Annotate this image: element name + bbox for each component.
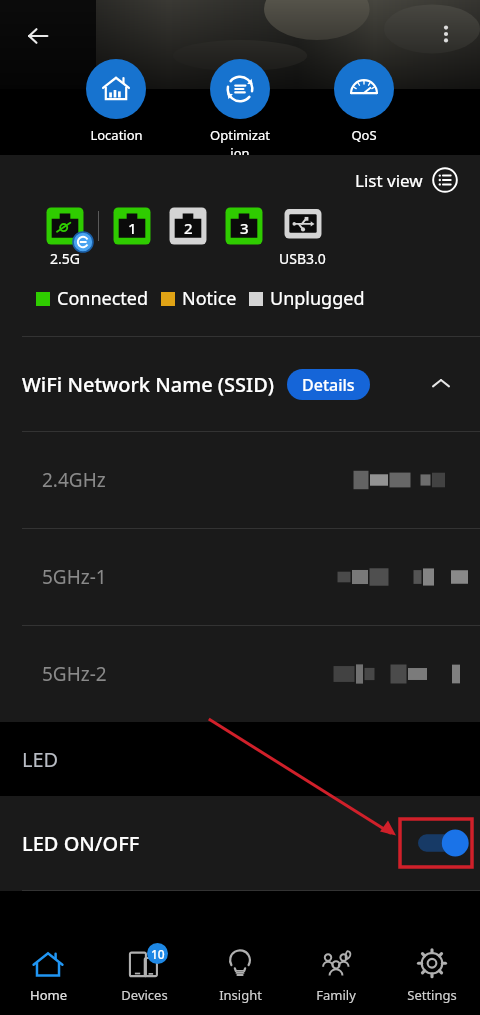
staticText: Notice xyxy=(182,286,237,311)
staticText: Home xyxy=(30,986,67,1004)
staticText: Details xyxy=(302,374,355,396)
button[interactable]: 5GHz-1 xyxy=(0,529,480,625)
staticText: LED ON/OFF xyxy=(22,830,140,857)
button[interactable]: Insight xyxy=(192,939,288,1004)
button[interactable]: Optimization xyxy=(210,59,270,162)
button[interactable]: QoS xyxy=(334,59,394,144)
staticText: 5GHz-2 xyxy=(42,661,107,687)
button[interactable]: Family xyxy=(288,939,384,1004)
staticText: 5GHz-1 xyxy=(42,564,107,590)
button[interactable]: 1 xyxy=(111,205,153,268)
staticText: USB3.0 xyxy=(279,249,326,268)
button[interactable]: Home xyxy=(0,939,96,1004)
button[interactable]: Details xyxy=(287,369,370,400)
staticText: 2.5G xyxy=(50,249,80,268)
button[interactable]: LED ON/OFF xyxy=(0,796,480,890)
staticText: Insight xyxy=(219,986,262,1004)
staticText: WiFi Network Name (SSID) xyxy=(22,371,274,398)
staticText: 3 xyxy=(240,218,249,238)
button[interactable]: Settings xyxy=(384,939,480,1004)
button[interactable]: 2.4GHz xyxy=(0,432,480,528)
button[interactable]: More options xyxy=(422,10,470,58)
staticText: Family xyxy=(316,986,356,1004)
button[interactable]: 3 xyxy=(223,205,265,268)
button[interactable]: Back xyxy=(14,12,62,60)
other: LED on off toggle xyxy=(400,819,472,867)
staticText: Optimization xyxy=(210,126,270,162)
staticText: Location xyxy=(90,126,143,144)
button[interactable]: USB3.0 xyxy=(279,205,326,268)
staticText: LED xyxy=(22,746,59,773)
staticText: 2.4GHz xyxy=(42,467,106,493)
staticText: Connected xyxy=(57,286,149,311)
staticText: 2 xyxy=(184,218,193,238)
staticText: 1 xyxy=(128,218,137,238)
button[interactable]: 10 xyxy=(96,939,192,1004)
button[interactable]: 2.5G xyxy=(44,205,86,268)
button[interactable]: 5GHz-2 xyxy=(0,626,480,722)
staticText: 10 xyxy=(151,946,165,962)
staticText: Settings xyxy=(407,986,457,1004)
staticText: QoS xyxy=(351,126,377,144)
button[interactable]: List view xyxy=(355,167,458,193)
button[interactable]: Location xyxy=(86,59,146,144)
staticText: List view xyxy=(355,169,423,192)
staticText: Devices xyxy=(121,986,168,1004)
button[interactable]: 2 xyxy=(167,205,209,268)
staticText: Unplugged xyxy=(270,286,365,311)
button[interactable]: Collapse xyxy=(424,367,458,401)
